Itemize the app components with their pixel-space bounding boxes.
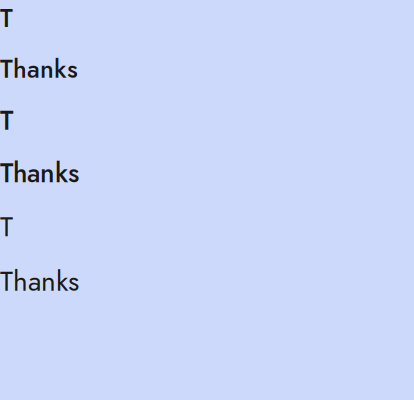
staticText: T	[0, 101, 13, 140]
staticText: Thanks	[0, 51, 78, 87]
staticText: Thanks	[0, 154, 79, 192]
staticText: T	[0, 206, 13, 247]
staticText: T	[0, 0, 13, 37]
staticText: Thanks	[0, 261, 79, 301]
